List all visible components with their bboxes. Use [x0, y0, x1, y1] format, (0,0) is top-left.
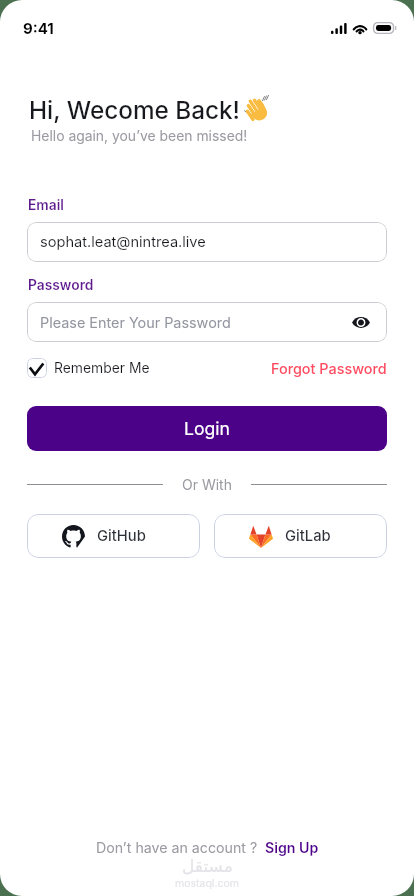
staticText: mostaql.com: [175, 877, 239, 890]
staticText: مستقل: [182, 856, 233, 876]
staticText: Email: [28, 197, 64, 214]
staticText: Please Enter Your Password: [40, 314, 231, 331]
button[interactable]: Login: [27, 406, 387, 451]
staticText: Remember Me: [54, 360, 150, 377]
button[interactable]: Remember Me: [27, 358, 150, 378]
staticText: 9:41: [23, 19, 54, 37]
staticText: Or With: [182, 476, 232, 492]
button[interactable]: Show password: [349, 310, 373, 334]
staticText: sophat.leat@nintrea.live: [40, 233, 206, 251]
staticText: Forgot Password: [271, 360, 387, 377]
staticText: Password: [28, 277, 94, 294]
button[interactable]: Please Enter Your Password: [27, 302, 387, 342]
staticText: GitLab: [285, 527, 331, 545]
staticText: Hello again, you’ve been missed!: [31, 128, 248, 145]
button[interactable]: GitLab: [214, 514, 387, 558]
staticText: Hi, Wecome Back!: [29, 95, 241, 124]
staticText: GitHub: [97, 527, 146, 545]
button[interactable]: Forgot Password: [271, 360, 387, 377]
staticText: Login: [184, 418, 230, 439]
staticText: Don’t have an account ?: [96, 839, 258, 856]
staticText: Sign Up: [265, 839, 319, 856]
button[interactable]: GitHub: [27, 514, 200, 558]
button[interactable]: Sign Up: [265, 839, 319, 856]
button[interactable]: sophat.leat@nintrea.live: [27, 222, 387, 262]
